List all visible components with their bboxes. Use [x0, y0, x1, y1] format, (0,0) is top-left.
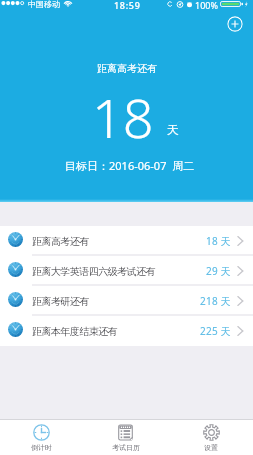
- staticText: 目标日：2016-06-07 周二: [65, 158, 195, 173]
- staticText: 距离本年度结束还有: [32, 325, 118, 338]
- button[interactable]: 设置: [169, 419, 253, 455]
- staticText: 天: [167, 122, 179, 137]
- staticText: 中国移动: [28, 0, 60, 9]
- staticText: 218 天: [200, 294, 232, 308]
- button[interactable]: 倒计时: [0, 419, 82, 455]
- staticText: 考试日历: [112, 443, 140, 452]
- staticText: 100%: [195, 0, 218, 11]
- button[interactable]: 距离考研还有: [0, 286, 253, 316]
- button[interactable]: 距离本年度结束还有: [0, 316, 253, 346]
- button[interactable]: Add countdown: [227, 16, 243, 32]
- staticText: 18: [92, 80, 154, 154]
- staticText: 29 天: [206, 264, 232, 278]
- staticText: 距离高考还有: [32, 235, 89, 248]
- staticText: 距离高考还有: [97, 62, 157, 75]
- staticText: 距离大学英语四六级考试还有: [32, 265, 155, 278]
- button[interactable]: 考试日历: [83, 419, 168, 455]
- staticText: 设置: [204, 443, 218, 452]
- staticText: 距离考研还有: [32, 295, 89, 308]
- staticText: 225 天: [200, 324, 232, 338]
- button[interactable]: 距离大学英语四六级考试还有: [0, 256, 253, 286]
- staticText: 倒计时: [31, 443, 52, 452]
- button[interactable]: 距离高考还有: [0, 226, 253, 256]
- staticText: 18:59: [114, 0, 141, 11]
- staticText: 18 天: [206, 234, 232, 248]
